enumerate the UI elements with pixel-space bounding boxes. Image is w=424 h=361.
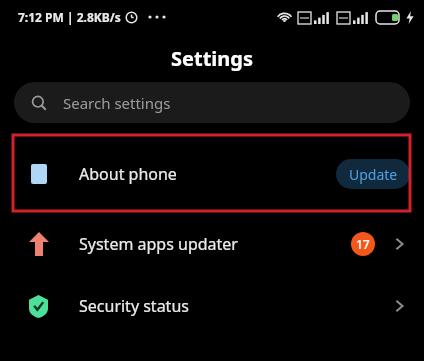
staticText: System apps updater [79,233,238,255]
staticText: Settings [171,45,253,72]
staticText: 7:12 PM | 2.8KB/s [18,9,121,25]
other: Open [388,295,410,317]
other: Open [388,233,410,255]
staticText: Update [349,165,398,184]
button[interactable]: System apps updater [0,213,424,275]
staticText: Security status [79,295,189,317]
button[interactable]: Security status [0,275,424,337]
staticText: Search settings [63,93,171,113]
button[interactable]: Update [336,159,410,189]
button[interactable]: About phone [0,134,424,213]
staticText: About phone [79,163,177,185]
staticText: 17 [356,236,370,252]
button[interactable]: Search settings [14,82,410,123]
